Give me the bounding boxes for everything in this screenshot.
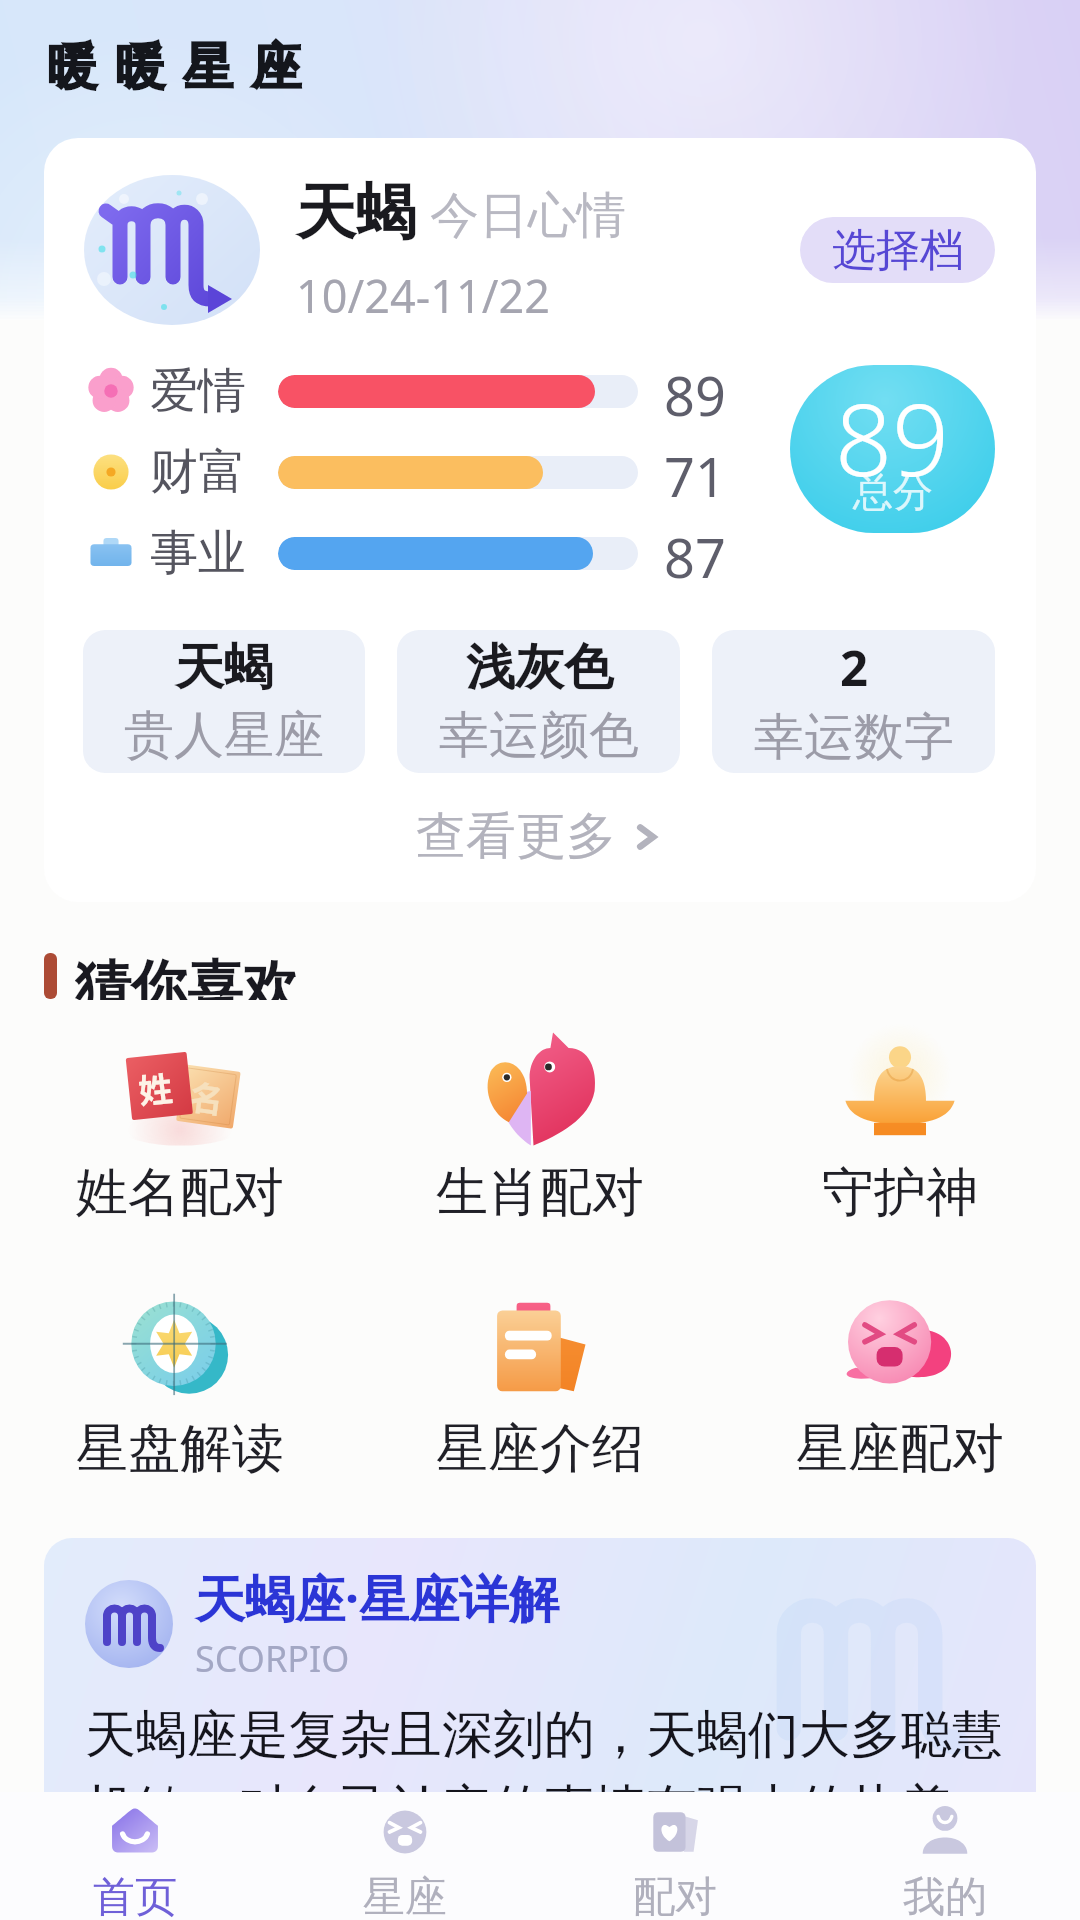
staticText: 配对 — [633, 1871, 717, 1920]
staticText: 2 — [840, 634, 869, 701]
staticText: 星座介绍 — [436, 1416, 644, 1482]
staticText: 星座 — [363, 1871, 447, 1920]
staticText: 天蝎 — [296, 175, 416, 251]
button[interactable]: 2 — [712, 630, 995, 773]
staticText: 幸运颜色 — [439, 704, 639, 767]
staticText: 浅灰色 — [466, 637, 613, 699]
staticText: 守护神 — [822, 1160, 978, 1226]
button[interactable]: 首页 — [0, 1792, 270, 1920]
staticText: 10/24-11/22 — [296, 265, 550, 326]
button[interactable]: 姓名配对 — [0, 1026, 360, 1226]
button[interactable]: 守护神 — [720, 1026, 1080, 1226]
staticText: SCORPIO — [195, 1634, 350, 1683]
staticText: 87 — [664, 520, 726, 586]
staticText: 天蝎 — [175, 637, 273, 699]
button[interactable]: 查看更多 — [44, 805, 1036, 902]
staticText: 爱情 — [150, 361, 246, 421]
staticText: 事业 — [150, 523, 246, 583]
staticText: 财富 — [150, 442, 246, 502]
staticText: 星盘解读 — [76, 1416, 284, 1482]
staticText: 89 — [664, 358, 726, 424]
button[interactable]: 星座配对 — [720, 1282, 1080, 1482]
staticText: 我的 — [903, 1871, 987, 1920]
staticText: 贵人星座 — [124, 704, 324, 767]
staticText: 天蝎座是复杂且深刻的，天蝎们大多聪慧机敏，对自己认定的事情有强大的执着 — [85, 1703, 1024, 1841]
staticText: 生肖配对 — [436, 1160, 644, 1226]
staticText: 选择档 — [832, 223, 964, 278]
button[interactable]: 天蝎 — [83, 630, 365, 773]
button[interactable]: 星盘解读 — [0, 1282, 360, 1482]
staticText: 星座配对 — [796, 1416, 1004, 1482]
button[interactable]: 星座 — [270, 1792, 540, 1920]
staticText: 今日心情 — [430, 185, 626, 247]
staticText: 猜你喜欢 — [75, 952, 299, 1000]
staticText: 幸运数字 — [754, 706, 954, 769]
staticText: 查看更多 — [416, 805, 616, 868]
button[interactable]: 配对 — [540, 1792, 810, 1920]
staticText: 姓名配对 — [76, 1160, 284, 1226]
staticText: 暖暖星座 — [38, 36, 310, 99]
staticText: 89 — [835, 369, 950, 505]
staticText: 71 — [664, 439, 726, 505]
button[interactable]: 选择档 — [800, 217, 995, 283]
staticText: 首页 — [93, 1871, 177, 1920]
button[interactable]: 浅灰色 — [397, 630, 680, 773]
button[interactable]: 星座介绍 — [360, 1282, 720, 1482]
staticText: 总分 — [853, 467, 933, 517]
button[interactable]: 我的 — [810, 1792, 1080, 1920]
button[interactable]: 生肖配对 — [360, 1026, 720, 1226]
staticText: 天蝎座·星座详解 — [195, 1564, 560, 1632]
